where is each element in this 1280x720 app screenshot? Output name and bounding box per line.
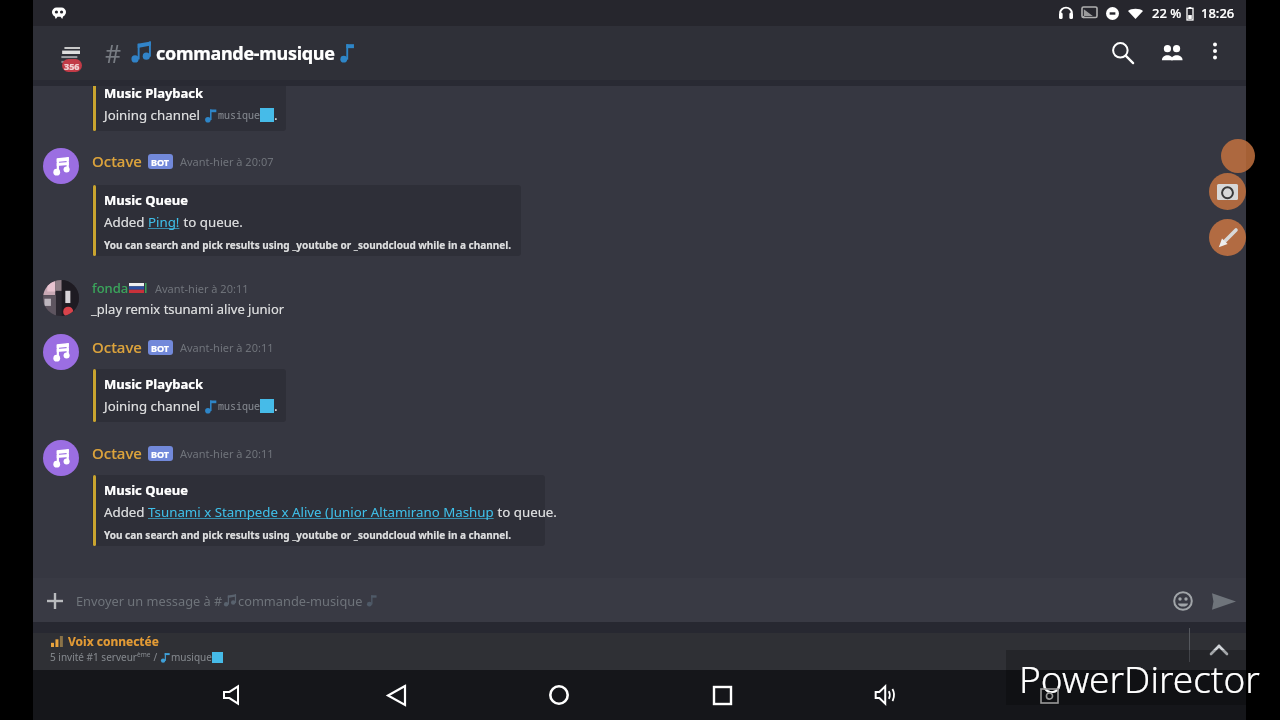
button[interactable]: Add attachment: [40, 586, 70, 616]
staticText: BOT: [151, 448, 170, 460]
staticText: Voix connectée: [68, 633, 159, 649]
staticText: Avant-hier à 20:11: [180, 446, 274, 461]
staticText: Avant-hier à 20:11: [155, 281, 249, 296]
staticText: Joining channel: [104, 106, 204, 124]
staticText: Added: [104, 503, 148, 521]
staticText: .: [274, 106, 278, 124]
staticText: Octave: [92, 337, 142, 357]
staticText: BOT: [151, 156, 170, 168]
button[interactable]: More options: [1193, 29, 1237, 73]
button[interactable]: Screenshot: [1209, 173, 1246, 210]
staticText: Music Playback: [104, 86, 204, 102]
button[interactable]: Search: [1099, 29, 1147, 77]
button[interactable]: Recent apps: [706, 679, 738, 711]
staticText: 356: [64, 60, 80, 72]
staticText: commande-musique: [238, 592, 366, 609]
button[interactable]: Members: [1148, 29, 1196, 77]
button[interactable]: Volume up: [870, 679, 902, 711]
staticText: PowerDirector: [1019, 653, 1260, 703]
staticText: .: [274, 397, 278, 415]
staticText: l: [144, 279, 148, 297]
staticText: ème: [137, 650, 151, 659]
staticText: Music Playback: [104, 375, 204, 393]
staticText: 18:26: [1201, 4, 1235, 22]
staticText: Octave: [92, 443, 142, 463]
button[interactable]: Back: [380, 679, 412, 711]
staticText: musique: [171, 650, 212, 664]
staticText: 5 invité #1 serveur: [50, 650, 137, 664]
button[interactable]: Volume down: [217, 679, 249, 711]
staticText: Envoyer un message à #: [76, 592, 223, 609]
button[interactable]: Send message: [1208, 585, 1240, 617]
staticText: Avant-hier à 20:11: [180, 340, 274, 355]
staticText: You can search and pick results using _y…: [104, 238, 511, 252]
staticText: fonda: [92, 279, 129, 297]
staticText: Tsunami x Stampede x Alive (Junior Altam…: [148, 503, 494, 521]
staticText: Added: [104, 213, 148, 231]
staticText: musique: [218, 399, 260, 413]
staticText: commande-musique: [156, 41, 335, 66]
button[interactable]: Channels menu: [45, 33, 85, 73]
staticText: musique: [218, 108, 260, 122]
staticText: _play remix tsunami alive junior: [91, 300, 285, 318]
staticText: to queue.: [180, 213, 243, 231]
staticText: 22 %: [1152, 4, 1182, 22]
button[interactable]: Home: [543, 679, 575, 711]
staticText: Music Queue: [104, 191, 188, 209]
staticText: to queue.: [494, 503, 557, 521]
staticText: Avant-hier à 20:07: [180, 154, 274, 169]
staticText: You can search and pick results using _y…: [104, 528, 511, 542]
staticText: #: [105, 36, 122, 70]
button[interactable]: Expand voice panel: [1202, 633, 1236, 667]
button[interactable]: Record: [1221, 139, 1255, 173]
button[interactable]: Draw: [1209, 219, 1246, 256]
staticText: Joining channel: [104, 397, 204, 415]
staticText: Octave: [92, 151, 142, 171]
staticText: Music Queue: [104, 481, 188, 499]
button[interactable]: Emoji: [1167, 585, 1199, 617]
staticText: Ping!: [148, 213, 180, 231]
staticText: BOT: [151, 342, 170, 354]
staticText: /: [151, 650, 160, 664]
